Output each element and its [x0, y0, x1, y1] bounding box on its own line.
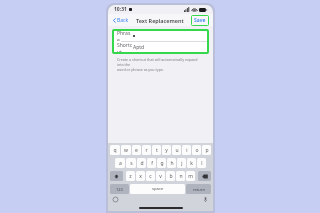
staticText: w [124, 147, 128, 154]
staticText: v [159, 173, 162, 180]
staticText: e [135, 147, 138, 154]
button[interactable]: t [152, 145, 161, 155]
staticText: 10:31 [114, 6, 127, 13]
button[interactable]: i [182, 145, 191, 155]
button[interactable]: r [142, 145, 151, 155]
staticText: h [170, 160, 174, 167]
button[interactable]: h [167, 158, 176, 168]
staticText: t [156, 147, 158, 154]
button[interactable]: Back [112, 15, 130, 26]
staticText: j [181, 160, 183, 167]
button[interactable]: g [157, 158, 166, 168]
button[interactable]: return [186, 184, 211, 194]
button[interactable]: m [186, 171, 195, 181]
button[interactable]: Shift [110, 171, 123, 181]
staticText: word or phrase as you type. [117, 67, 164, 72]
button[interactable]: q [110, 145, 120, 155]
staticText: x [139, 173, 142, 180]
staticText: Save [194, 17, 206, 24]
button[interactable]: Delete [198, 171, 211, 181]
button[interactable]: o [192, 145, 201, 155]
button[interactable]: e [132, 145, 141, 155]
staticText: r [145, 147, 148, 154]
staticText: g [160, 160, 164, 167]
button[interactable]: d [137, 158, 146, 168]
staticText: f [151, 160, 153, 167]
staticText: n [179, 173, 183, 180]
button[interactable]: Dictate [202, 196, 209, 203]
button[interactable]: k [187, 158, 196, 168]
staticText: o [195, 147, 199, 154]
staticText: 123 [116, 187, 123, 192]
button[interactable]: Phrase [113, 30, 208, 41]
button[interactable]: w [121, 145, 131, 155]
button[interactable]: c [146, 171, 155, 181]
staticText: Text Replacement [136, 17, 184, 24]
button[interactable]: s [126, 158, 136, 168]
staticText: c [149, 173, 152, 180]
staticText: Create a shortcut that will automaticall… [117, 57, 205, 67]
button[interactable]: a [115, 158, 125, 168]
button[interactable]: l [197, 158, 206, 168]
button[interactable]: Save [191, 15, 209, 26]
staticText: Back [117, 17, 129, 24]
button[interactable]: z [126, 171, 135, 181]
button[interactable]: p [202, 145, 211, 155]
button[interactable]: v [156, 171, 165, 181]
staticText: z [129, 173, 132, 180]
button[interactable]: j [177, 158, 186, 168]
button[interactable]: f [147, 158, 156, 168]
staticText: i [186, 147, 188, 154]
staticText: d [140, 160, 144, 167]
staticText: s [130, 160, 133, 167]
button[interactable]: y [162, 145, 171, 155]
staticText: u [175, 147, 179, 154]
staticText: a [119, 160, 122, 167]
staticText: b [169, 173, 173, 180]
staticText: p [205, 147, 209, 154]
staticText: l [201, 160, 203, 167]
staticText: y [165, 147, 168, 154]
staticText: m [188, 173, 193, 180]
staticText: Aptd [133, 44, 145, 51]
staticText: k [190, 160, 193, 167]
button[interactable]: space [130, 184, 185, 194]
button[interactable]: n [176, 171, 185, 181]
button[interactable]: 123 [110, 184, 129, 194]
staticText: Phrase [117, 30, 133, 41]
staticText: Shortcut [117, 42, 133, 53]
staticText: return [193, 187, 205, 192]
button[interactable]: Shortcut [113, 42, 208, 53]
button[interactable]: Emoji [112, 196, 119, 203]
button[interactable]: b [166, 171, 175, 181]
staticText: q [113, 147, 117, 154]
button[interactable]: u [172, 145, 181, 155]
staticText: space [152, 186, 164, 192]
button[interactable]: x [136, 171, 145, 181]
